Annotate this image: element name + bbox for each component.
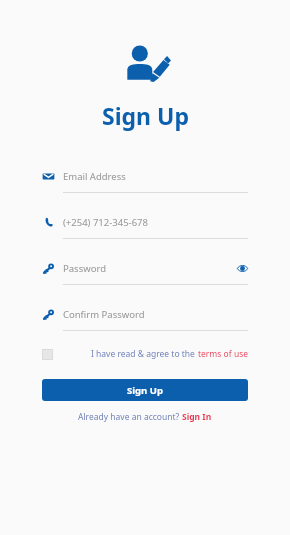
staticText: Email Address bbox=[63, 170, 126, 183]
button[interactable]: Password bbox=[42, 258, 248, 285]
button[interactable]: Email Address bbox=[42, 166, 248, 193]
staticText: Password bbox=[63, 262, 106, 275]
button[interactable]: Sign Up bbox=[42, 379, 248, 401]
button[interactable]: terms of use bbox=[198, 348, 248, 360]
staticText: Confirm Password bbox=[63, 308, 145, 321]
other: Sign up bbox=[119, 40, 171, 88]
staticText: (+254) 712-345-678 bbox=[63, 216, 148, 229]
button[interactable]: (+254) 712-345-678 bbox=[42, 212, 248, 239]
button[interactable]: Show password bbox=[237, 263, 248, 274]
button[interactable]: Confirm Password bbox=[42, 304, 248, 331]
button[interactable]: Agree to terms checkbox bbox=[42, 349, 53, 360]
staticText: Sign In bbox=[182, 411, 212, 423]
staticText: Already have an account? bbox=[78, 411, 182, 423]
staticText: terms of use bbox=[198, 348, 248, 360]
staticText: I have read & agree to the bbox=[91, 348, 198, 360]
staticText: Sign Up bbox=[102, 100, 189, 131]
staticText: Sign Up bbox=[127, 384, 163, 397]
button[interactable]: Sign In bbox=[182, 411, 212, 423]
